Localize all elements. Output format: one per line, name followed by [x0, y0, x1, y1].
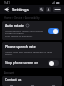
staticText: Phone speech rate — [5, 44, 36, 49]
button[interactable]: Back — [3, 6, 10, 13]
staticText: Settings — [12, 7, 29, 13]
button[interactable]: Phone speech rate — [2, 42, 62, 58]
button[interactable]: Toggle on — [48, 28, 59, 34]
button[interactable]: Account — [46, 7, 51, 12]
staticText: Auto rotate — [5, 23, 25, 28]
button[interactable]: Reset factory data — [2, 84, 62, 86]
button[interactable]: Stop phone screen on — [2, 58, 62, 68]
button[interactable]: Toggle off — [48, 60, 59, 66]
staticText: Home > Device > Accessibility — [4, 16, 40, 20]
button[interactable]: Contact us — [2, 76, 62, 84]
button[interactable]: More options — [53, 7, 61, 12]
staticText: Account — [4, 71, 15, 75]
staticText: Contact us — [5, 78, 59, 82]
staticText: 9:41 — [4, 1, 10, 5]
button[interactable]: Search — [39, 7, 44, 12]
button[interactable]: Auto rotate — [2, 21, 62, 40]
staticText: Stop phone screen on — [5, 61, 48, 65]
staticText: Adjust how fast spoken feedback is read … — [5, 50, 59, 56]
staticText: Automatically rotate your phone screen t… — [5, 29, 46, 38]
